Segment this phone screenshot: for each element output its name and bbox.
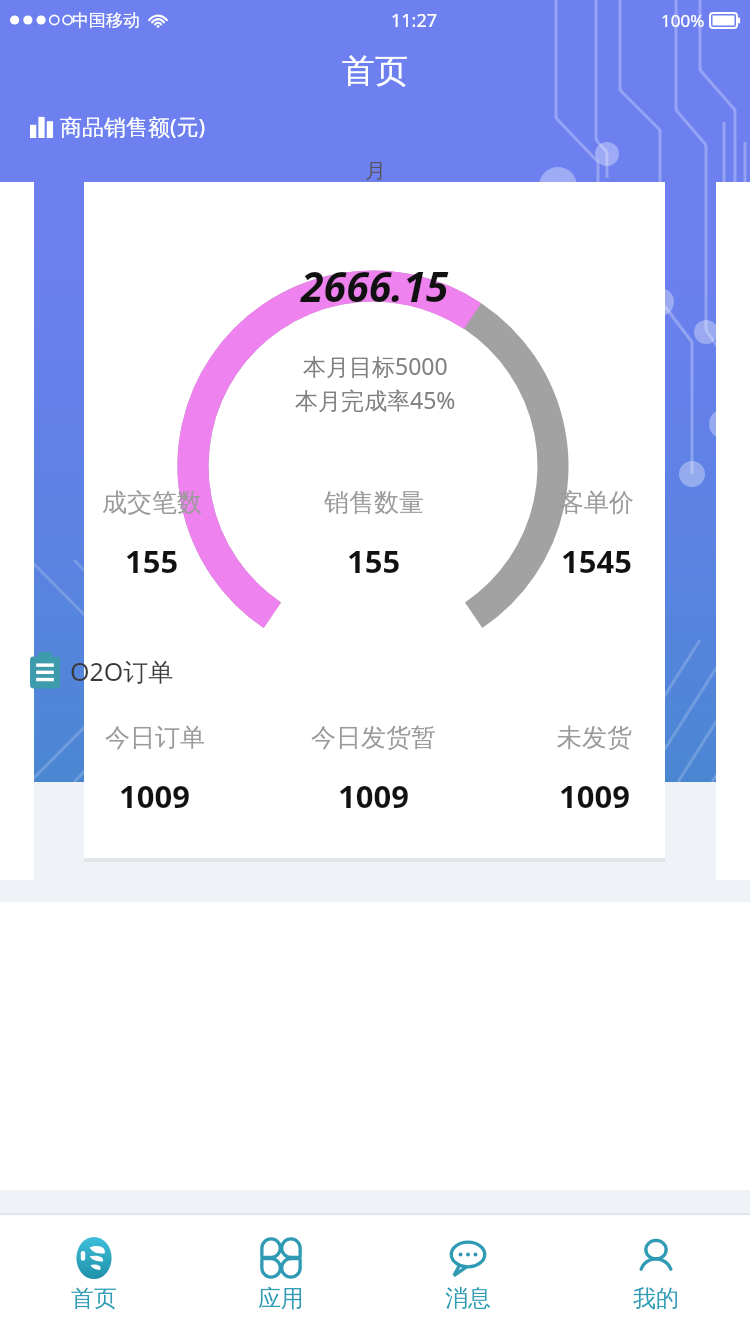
staticText: 消息	[445, 1284, 491, 1313]
staticText: 2666.15	[301, 258, 449, 314]
staticText: 商品销售额(元)	[60, 111, 206, 141]
button[interactable]: 应用	[187, 1230, 374, 1319]
button[interactable]: 消息	[374, 1230, 562, 1319]
staticText: O2O订单	[70, 654, 174, 688]
staticText: 今日订单	[105, 722, 205, 753]
button[interactable]: 今日订单	[46, 722, 263, 817]
other: O2O orders	[28, 652, 62, 690]
staticText: 客单价	[559, 487, 634, 518]
button[interactable]: 销售数量	[262, 487, 485, 582]
staticText: 1009	[338, 775, 409, 817]
staticText: 155	[347, 540, 401, 582]
staticText: 未发货	[557, 722, 632, 753]
button[interactable]: 今日发货暂	[263, 722, 484, 817]
staticText: 本月目标5000	[303, 350, 448, 381]
staticText: 1009	[559, 775, 630, 817]
staticText: 首页	[71, 1284, 117, 1313]
staticText: 中国移动	[72, 10, 140, 31]
staticText: 销售数量	[324, 487, 424, 518]
button[interactable]: 客单价	[485, 487, 708, 582]
button[interactable]: 未发货	[484, 722, 704, 817]
button[interactable]: 首页	[0, 1230, 187, 1319]
button[interactable]: 我的	[562, 1230, 750, 1319]
staticText: 155	[125, 540, 179, 582]
staticText: 应用	[258, 1284, 304, 1313]
staticText: 我的	[633, 1284, 679, 1313]
staticText: 1545	[561, 540, 632, 582]
staticText: 本月完成率45%	[295, 384, 456, 415]
staticText: 成交笔数	[102, 487, 202, 518]
staticText: 100%	[661, 9, 705, 32]
staticText: 今日发货暂	[311, 722, 436, 753]
staticText: 首页	[342, 50, 408, 92]
button[interactable]: 成交笔数	[42, 487, 262, 582]
staticText: 1009	[119, 775, 190, 817]
staticText: 月	[365, 158, 386, 184]
staticText: 11:27	[391, 8, 438, 33]
